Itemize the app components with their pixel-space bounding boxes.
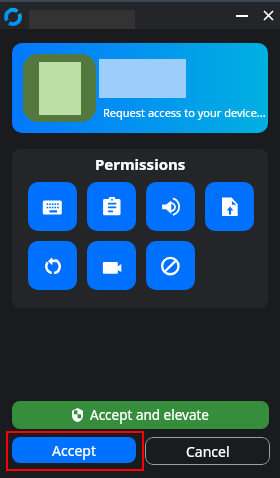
staticText: Cancel xyxy=(186,442,230,461)
button[interactable]: Accept and elevate xyxy=(12,401,269,429)
button[interactable]: Restart xyxy=(28,241,77,290)
button[interactable]: Clipboard xyxy=(87,182,136,231)
staticText: Accept and elevate xyxy=(90,406,209,424)
button[interactable]: File transfer xyxy=(205,182,254,231)
button[interactable]: Video xyxy=(87,241,136,290)
button[interactable]: Accept xyxy=(12,437,136,463)
staticText: Request access to your device... xyxy=(103,105,266,120)
button[interactable]: Request access to your device... xyxy=(12,43,268,133)
button[interactable]: Cancel xyxy=(145,437,270,465)
button[interactable]: Block xyxy=(146,241,195,290)
staticText: Permissions xyxy=(95,154,186,174)
staticText: Accept xyxy=(52,441,96,460)
button[interactable]: Keyboard xyxy=(28,182,77,231)
button[interactable]: Close xyxy=(256,2,280,29)
button[interactable]: Minimize xyxy=(227,2,256,29)
button[interactable]: Audio xyxy=(146,182,195,231)
